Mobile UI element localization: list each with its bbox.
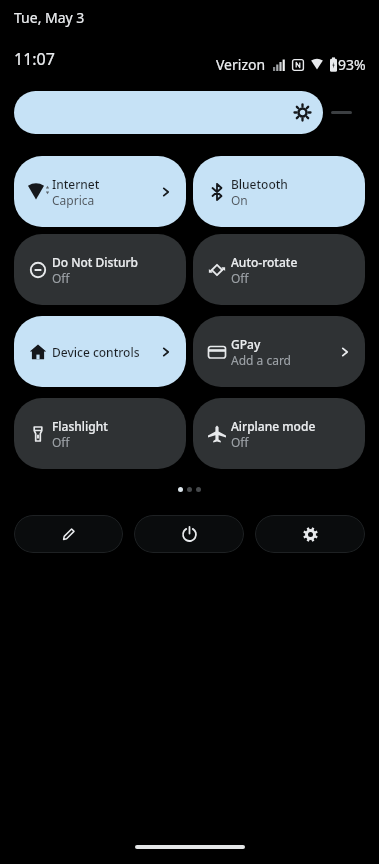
button[interactable]: Auto-rotate [193, 234, 365, 305]
staticText: Add a card [231, 352, 291, 368]
staticText: Internet [52, 176, 100, 192]
button[interactable]: Internet [14, 156, 186, 227]
button[interactable]: Airplane mode [193, 398, 365, 469]
staticText: Off [52, 270, 70, 286]
staticText: 11:07 [14, 48, 55, 70]
staticText: GPay [231, 336, 261, 352]
staticText: Airplane mode [231, 418, 316, 434]
button[interactable]: GPay [193, 316, 365, 387]
staticText: On [231, 192, 248, 208]
staticText: Bluetooth [231, 176, 288, 192]
staticText: Do Not Disturb [52, 254, 139, 270]
staticText: 93% [338, 55, 366, 74]
button[interactable]: Device controls [14, 316, 186, 387]
staticText: Flashlight [52, 418, 108, 434]
staticText: Tue, May 3 [14, 8, 85, 27]
button[interactable]: Flashlight [14, 398, 186, 469]
button[interactable] [14, 515, 123, 553]
button[interactable] [14, 91, 323, 134]
staticText: Off [231, 270, 249, 286]
button[interactable] [255, 515, 365, 553]
staticText: Off [52, 434, 70, 450]
staticText: Auto-rotate [231, 254, 298, 270]
staticText: Caprica [52, 192, 95, 208]
button[interactable]: Do Not Disturb [14, 234, 186, 305]
staticText: Verizon [216, 55, 266, 74]
staticText: Device controls [52, 344, 140, 360]
button[interactable] [134, 515, 244, 553]
button[interactable]: Bluetooth [193, 156, 365, 227]
staticText: Off [231, 434, 249, 450]
